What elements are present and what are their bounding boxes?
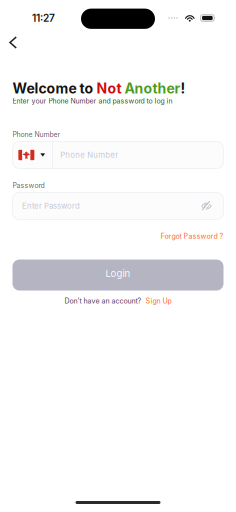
staticText: Phone Number [60, 150, 118, 160]
button[interactable]: Select country code [12, 141, 52, 168]
staticText: Enter your Phone Number and password to … [12, 97, 172, 105]
button[interactable]: Show password [195, 192, 223, 219]
staticText: ! [180, 80, 185, 97]
staticText: 11:27 [32, 12, 55, 24]
staticText: Enter Password [22, 201, 80, 211]
staticText: Login [105, 268, 130, 279]
staticText: Password [12, 181, 44, 190]
staticText: Forgot Password ? [160, 232, 223, 240]
staticText: Phone Number [12, 130, 60, 139]
button[interactable]: Forgot Password ? [154, 229, 223, 243]
staticText: Another [124, 80, 180, 97]
staticText: Sign Up [145, 297, 171, 305]
staticText: Don't have an account? [64, 297, 141, 305]
staticText: Welcome to [12, 80, 96, 97]
button[interactable]: Login [12, 259, 223, 290]
button[interactable]: Back [0, 32, 30, 52]
button[interactable]: Sign Up [141, 297, 171, 305]
staticText: Not [96, 80, 124, 97]
